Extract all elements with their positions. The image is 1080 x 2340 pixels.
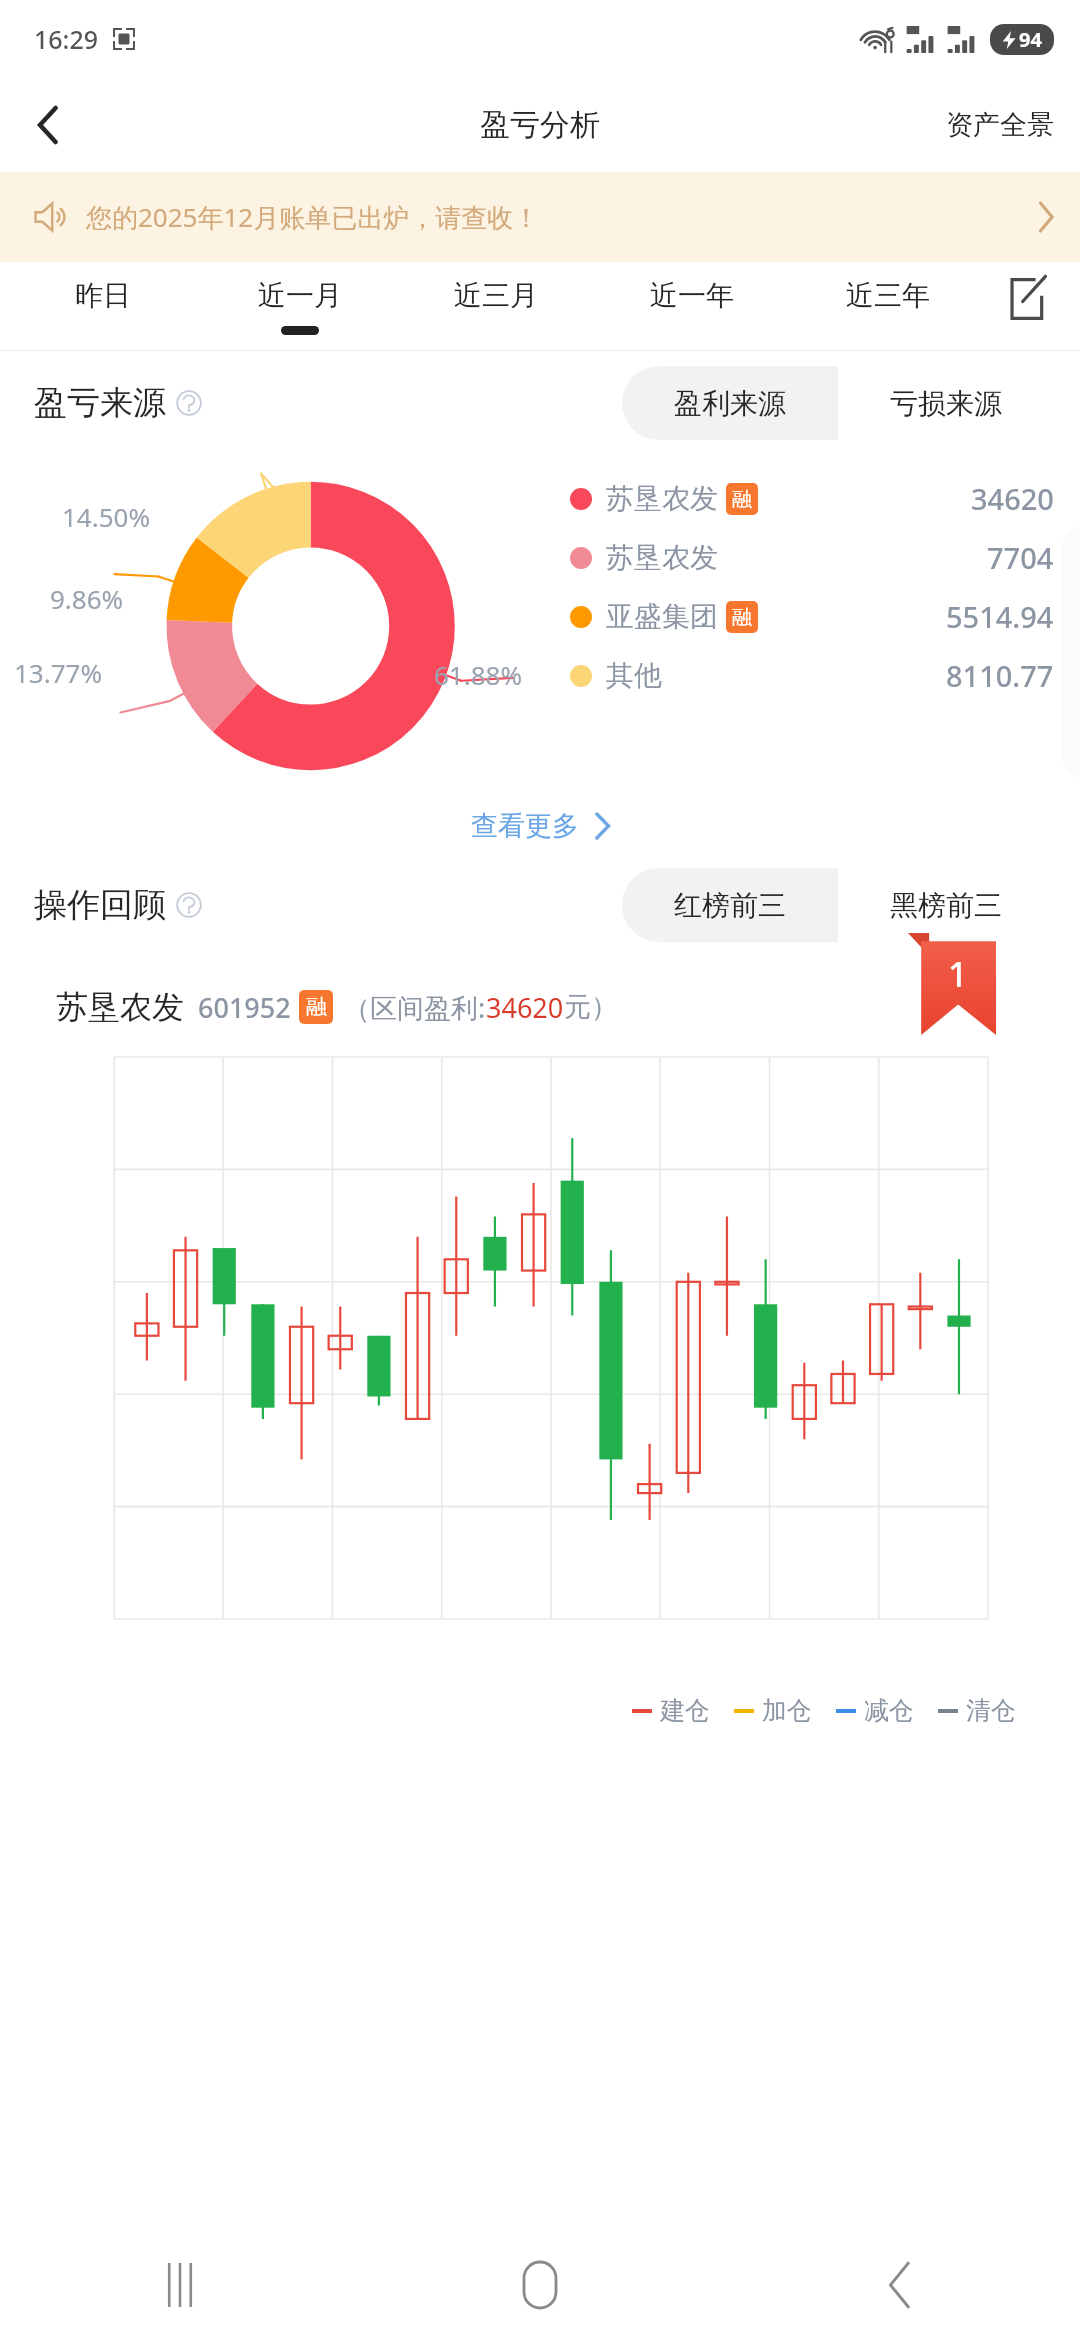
staticText: 查看更多 (471, 809, 579, 843)
button[interactable]: 苏垦农发 (30, 957, 1050, 1797)
staticText: 清仓 (966, 1695, 1016, 1726)
staticText: 融 (306, 994, 327, 1020)
staticText: 建仓 (660, 1695, 710, 1726)
staticText: 亏损来源 (890, 386, 1002, 421)
staticText: 融 (732, 487, 752, 512)
staticText: （区间盈利: (343, 989, 486, 1026)
button[interactable]: 黑榜前三 (838, 868, 1054, 942)
staticText: 您的2025年12月账单已出炉，请查收！ (86, 199, 540, 235)
staticText: 9.86% (50, 581, 124, 616)
button[interactable]: 苏垦农发 (570, 479, 1054, 518)
button[interactable]: 其他 (570, 656, 1054, 695)
button[interactable]: 编辑 (986, 262, 1070, 350)
staticText: 601952 (198, 989, 291, 1026)
staticText: 8110.77 (946, 656, 1054, 695)
button[interactable]: 最近任务 (0, 2230, 360, 2340)
staticText: 34620 (971, 479, 1054, 518)
button[interactable]: 查看更多 (451, 799, 630, 853)
staticText: 94 (1019, 26, 1042, 53)
button[interactable]: 资产全景 (938, 96, 1062, 154)
staticText: 近三年 (846, 278, 930, 313)
button[interactable]: 亏损来源 (838, 366, 1054, 440)
staticText: 融 (732, 605, 752, 630)
button[interactable]: 返回 (720, 2230, 1080, 2340)
staticText: 16:29 (34, 22, 99, 56)
staticText: 1 (948, 951, 968, 997)
staticText: 苏垦农发 (56, 987, 184, 1027)
staticText: 苏垦农发 (606, 540, 718, 575)
button[interactable]: 近一月 (201, 262, 398, 350)
button[interactable]: 近三年 (790, 262, 986, 350)
staticText: 资产全景 (946, 108, 1054, 142)
staticText: 34620 (486, 989, 564, 1026)
staticText: 盈利来源 (674, 386, 786, 421)
button[interactable]: 苏垦农发 (570, 538, 1054, 577)
button[interactable]: 红榜前三 (622, 868, 838, 942)
staticText: 操作回顾 (34, 884, 166, 926)
staticText: 红榜前三 (674, 888, 786, 923)
staticText: 其他 (606, 658, 662, 693)
staticText: 元） (564, 990, 618, 1024)
button[interactable]: 亚盛集团 (570, 597, 1054, 636)
staticText: 5514.94 (946, 597, 1054, 636)
button[interactable]: 返回 (12, 89, 84, 161)
button[interactable]: 近一年 (594, 262, 790, 350)
staticText: 昨日 (75, 278, 131, 313)
staticText: 亚盛集团 (606, 599, 718, 634)
staticText: 加仓 (762, 1695, 812, 1726)
staticText: 盈亏分析 (480, 106, 600, 144)
staticText: 苏垦农发 (606, 481, 718, 516)
staticText: 近一月 (258, 278, 342, 313)
staticText: 14.50% (62, 499, 151, 534)
staticText: 13.77% (14, 655, 103, 690)
button[interactable]: 近三月 (398, 262, 594, 350)
staticText: 盈亏来源 (34, 382, 166, 424)
staticText: 61.88% (434, 657, 523, 692)
staticText: 黑榜前三 (890, 888, 1002, 923)
button[interactable]: 昨日 (4, 262, 201, 350)
staticText: 近三月 (454, 278, 538, 313)
button[interactable]: 主屏幕 (360, 2230, 720, 2340)
button[interactable]: 盈利来源 (622, 366, 838, 440)
staticText: 减仓 (864, 1695, 914, 1726)
staticText: 近一年 (650, 278, 734, 313)
button[interactable]: 您的2025年12月账单已出炉，请查收！ (0, 172, 1080, 262)
staticText: 7704 (987, 538, 1054, 577)
